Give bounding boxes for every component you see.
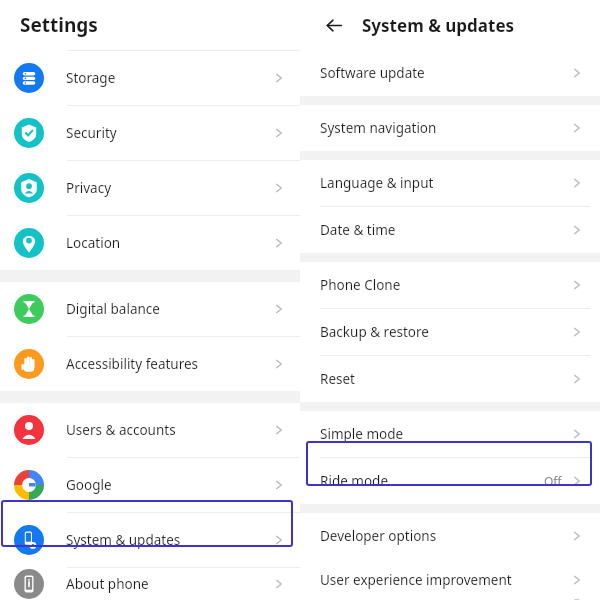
staticText: Backup & restore <box>320 323 429 341</box>
button[interactable]: Accessibility features <box>0 337 300 391</box>
button[interactable]: Ride mode <box>300 458 600 504</box>
staticText: Storage <box>66 69 116 87</box>
staticText: Accessibility features <box>66 355 199 373</box>
staticText: Ride mode <box>320 472 389 490</box>
staticText: User experience improvement <box>320 571 512 589</box>
staticText: Simple mode <box>320 425 404 443</box>
staticText: System & updates <box>362 14 515 37</box>
button[interactable]: Software update <box>300 50 600 96</box>
button[interactable]: User experience improvement <box>300 559 600 600</box>
staticText: Users & accounts <box>66 421 176 439</box>
button[interactable]: Simple mode <box>300 411 600 457</box>
button[interactable]: Privacy <box>0 161 300 215</box>
staticText: Language & input <box>320 174 434 192</box>
button[interactable]: About phone <box>0 568 300 600</box>
staticText: Software update <box>320 64 425 82</box>
staticText: Privacy <box>66 179 112 197</box>
button[interactable]: Storage <box>0 51 300 105</box>
button[interactable]: Developer options <box>300 513 600 559</box>
button[interactable]: Digital balance <box>0 282 300 336</box>
button[interactable] <box>306 441 592 486</box>
button[interactable]: Users & accounts <box>0 403 300 457</box>
staticText: Security <box>66 124 117 142</box>
staticText: System & updates <box>66 531 181 549</box>
staticText: Digital balance <box>66 300 160 318</box>
staticText: Phone Clone <box>320 276 401 294</box>
button[interactable]: Security <box>0 106 300 160</box>
staticText: About phone <box>66 575 149 593</box>
button[interactable]: Date & time <box>300 207 600 253</box>
button[interactable]: Language & input <box>300 160 600 206</box>
staticText: Reset <box>320 370 355 388</box>
button[interactable]: Location <box>0 216 300 270</box>
staticText: Google <box>66 476 112 494</box>
button[interactable]: System & updates <box>0 513 300 567</box>
staticText: System navigation <box>320 119 437 137</box>
button[interactable]: Google <box>0 458 300 512</box>
staticText: Off <box>544 473 562 489</box>
button[interactable]: Phone Clone <box>300 262 600 308</box>
button[interactable]: Reset <box>300 356 600 402</box>
staticText: Location <box>66 234 121 252</box>
button[interactable]: Backup & restore <box>300 309 600 355</box>
staticText: Date & time <box>320 221 396 239</box>
staticText: Developer options <box>320 527 437 545</box>
staticText: Settings <box>20 12 98 38</box>
button[interactable]: System navigation <box>300 105 600 151</box>
button[interactable]: Back <box>318 9 350 41</box>
button[interactable] <box>1 500 293 547</box>
